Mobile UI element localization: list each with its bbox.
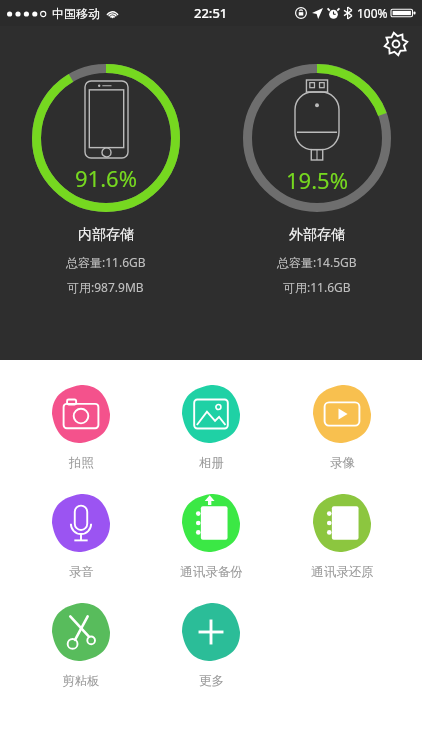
staticText: 更多 (199, 673, 224, 689)
button[interactable]: 通讯录还原 (292, 494, 392, 580)
button[interactable]: 通讯录备份 (161, 494, 261, 580)
button[interactable]: 录音 (31, 494, 131, 580)
staticText: 总容量:14.5GB (277, 254, 357, 270)
button[interactable]: Settings (378, 26, 414, 62)
staticText: 总容量:11.6GB (66, 254, 146, 270)
staticText: 可用:11.6GB (283, 279, 351, 295)
button[interactable]: 19.5% (211, 64, 422, 295)
button[interactable]: 拍照 (31, 385, 131, 471)
staticText: 外部存储 (289, 226, 345, 244)
staticText: 19.5% (286, 165, 348, 195)
button[interactable]: 更多 (161, 603, 261, 689)
staticText: 可用:987.9MB (67, 279, 144, 295)
staticText: 100% (357, 5, 388, 21)
button[interactable]: 91.6% (0, 64, 211, 295)
button[interactable]: 剪粘板 (31, 603, 131, 689)
staticText: 22:51 (194, 4, 228, 22)
staticText: 剪粘板 (62, 673, 100, 689)
button[interactable]: 录像 (292, 385, 392, 471)
button[interactable]: 相册 (161, 385, 261, 471)
staticText: 录像 (330, 455, 355, 471)
staticText: 相册 (199, 455, 224, 471)
staticText: 录音 (69, 564, 94, 580)
staticText: 中国移动 (52, 6, 100, 21)
staticText: 通讯录备份 (180, 564, 243, 580)
staticText: 内部存储 (78, 226, 134, 244)
staticText: 拍照 (69, 455, 94, 471)
staticText: 91.6% (75, 163, 137, 193)
staticText: 通讯录还原 (311, 564, 374, 580)
